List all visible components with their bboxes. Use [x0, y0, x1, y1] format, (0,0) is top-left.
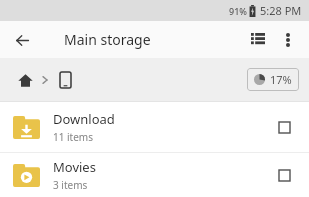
button[interactable]: List view [243, 25, 273, 55]
button[interactable]: Back [8, 26, 36, 54]
staticText: 5:28 PM [260, 3, 302, 18]
staticText: Movies [53, 158, 96, 176]
button[interactable]: Main storage [52, 67, 78, 93]
button[interactable]: Select Movies [269, 160, 299, 190]
button[interactable]: Select Download [269, 112, 299, 142]
staticText: 11 items [53, 130, 94, 144]
staticText: 17% [270, 72, 292, 87]
staticText: 3 items [53, 178, 88, 192]
button[interactable]: 17% [247, 68, 299, 91]
button[interactable]: Download [0, 102, 309, 152]
staticText: Download [53, 110, 115, 128]
staticText: Main storage [64, 30, 151, 49]
button[interactable]: Home [12, 67, 38, 93]
button[interactable]: Movies [0, 153, 309, 197]
staticText: 91% [229, 5, 247, 17]
button[interactable]: More options [273, 25, 303, 55]
